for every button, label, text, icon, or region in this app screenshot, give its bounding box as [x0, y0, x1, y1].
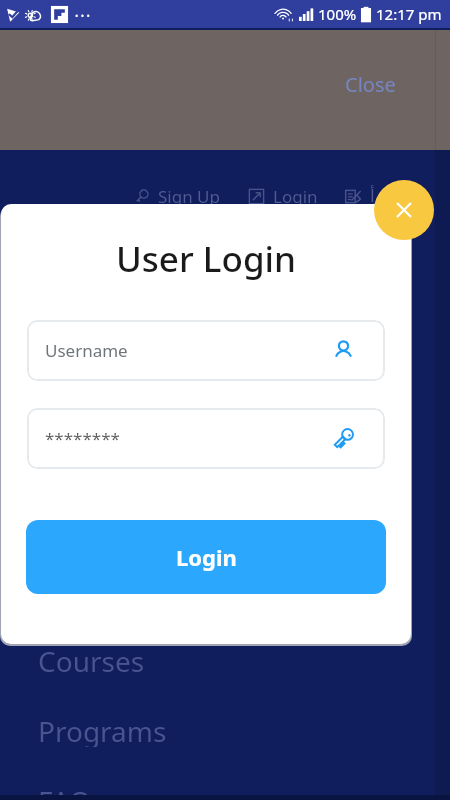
staticText: Close [345, 71, 396, 98]
button[interactable]: Close [374, 180, 434, 240]
button[interactable]: Sign Up [133, 185, 220, 208]
button[interactable]: Close [345, 71, 396, 98]
button[interactable]: ******** [27, 408, 385, 469]
button[interactable]: Login [26, 520, 386, 594]
staticText: Username [45, 339, 128, 362]
staticText: Sign Up [158, 185, 220, 208]
button[interactable]: Username [27, 320, 385, 381]
button[interactable]: أِ [345, 186, 375, 206]
staticText: Programs [38, 712, 167, 747]
button[interactable]: Programs [0, 712, 450, 747]
staticText: أِ [370, 186, 375, 206]
button[interactable]: FAQ [0, 782, 450, 800]
staticText: • • • [75, 9, 90, 21]
staticText: 100% [318, 4, 357, 24]
staticText: User Login [1, 235, 411, 283]
staticText: ******** [45, 427, 120, 450]
button[interactable]: Courses [0, 642, 450, 677]
staticText: Login [273, 185, 318, 208]
staticText: FAQ [38, 782, 92, 800]
staticText: 12:17 pm [376, 4, 442, 24]
staticText: Courses [38, 642, 145, 677]
staticText: Login [176, 542, 237, 572]
button[interactable]: Login [248, 185, 318, 208]
